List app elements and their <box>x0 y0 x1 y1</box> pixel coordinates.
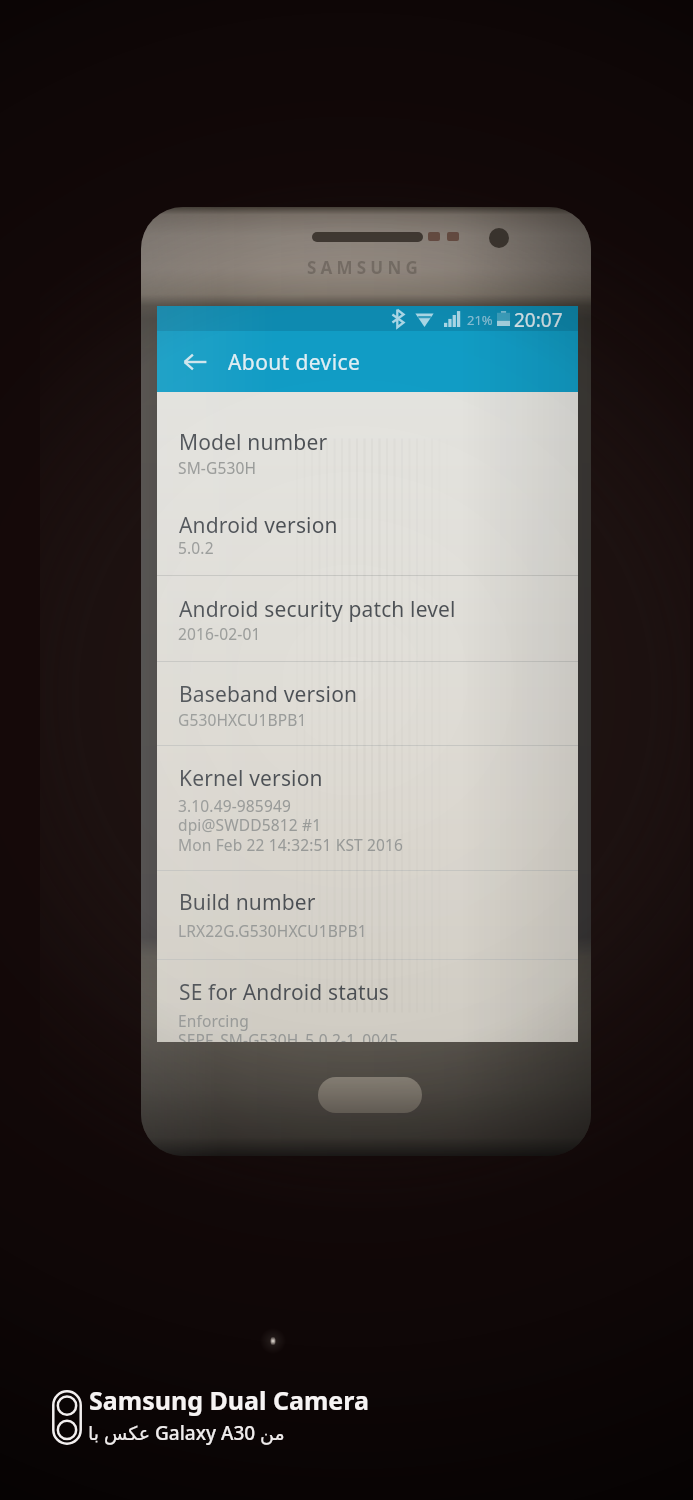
button[interactable]: Kernel version <box>157 746 578 870</box>
staticText: عکس با Galaxy A30 من <box>88 1420 285 1446</box>
staticText: Samsung Dual Camera <box>89 1383 369 1417</box>
button[interactable]: SE for Android status <box>157 960 578 1039</box>
staticText: 2016-02-01 <box>178 623 261 644</box>
staticText: LRX22G.G530HXCU1BPB1 <box>178 920 367 941</box>
staticText: Model number <box>179 428 328 457</box>
staticText: Baseband version <box>179 680 358 709</box>
button[interactable]: Back <box>182 349 208 375</box>
staticText: SAMSUNG <box>307 256 422 279</box>
button[interactable]: Build number <box>157 871 578 959</box>
button[interactable]: Android security patch level <box>157 576 578 661</box>
staticText: 21% <box>467 311 493 329</box>
staticText: dpi@SWDD5812 #1 <box>178 814 322 835</box>
staticText: Mon Feb 22 14:32:51 KST 2016 <box>178 834 404 855</box>
staticText: Enforcing <box>178 1010 249 1031</box>
button[interactable]: Model number <box>157 390 578 475</box>
staticText: 5.0.2 <box>178 537 214 558</box>
staticText: Build number <box>179 888 316 917</box>
button[interactable]: Home <box>318 1077 422 1113</box>
staticText: About device <box>228 348 361 377</box>
staticText: Android version <box>179 511 338 540</box>
staticText: 20:07 <box>514 307 563 332</box>
button[interactable]: Android version <box>157 475 578 561</box>
staticText: Kernel version <box>179 764 323 793</box>
staticText: Android security patch level <box>179 595 456 624</box>
other: Samsung Dual Camera <box>52 1390 82 1445</box>
staticText: SE for Android status <box>179 978 389 1007</box>
staticText: 3.10.49-985949 <box>178 795 291 816</box>
staticText: SM-G530H <box>178 457 257 478</box>
staticText: SEPF_SM-G530H_5.0.2-1_0045 <box>178 1029 399 1042</box>
button[interactable]: Baseband version <box>157 662 578 745</box>
staticText: G530HXCU1BPB1 <box>178 709 307 730</box>
